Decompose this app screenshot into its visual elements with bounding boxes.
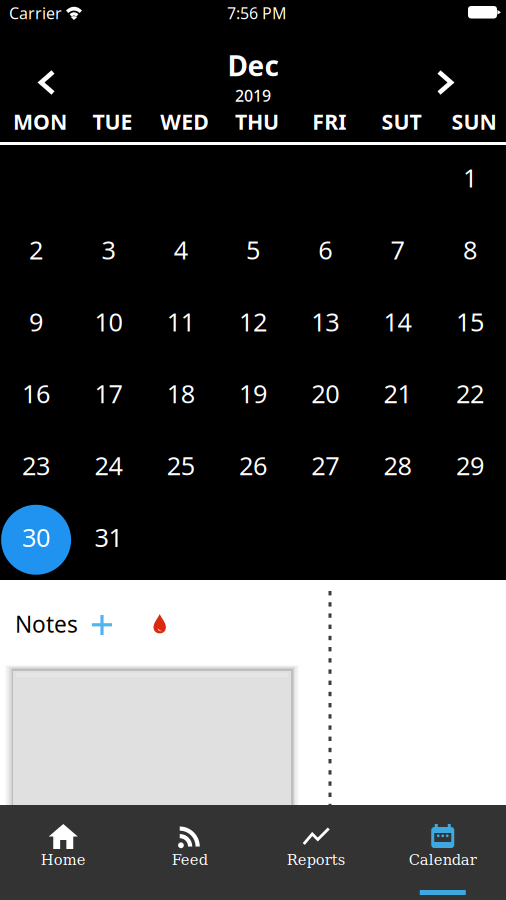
button[interactable]: Home: [0, 805, 126, 900]
staticText: Home: [41, 851, 86, 869]
button[interactable]: 25: [144, 435, 217, 507]
button[interactable]: 2: [0, 220, 72, 292]
button[interactable]: 18: [144, 363, 217, 435]
staticText: Calendar: [409, 851, 477, 869]
button[interactable]: 5: [217, 220, 289, 292]
staticText: 17: [94, 377, 122, 410]
staticText: 27: [311, 448, 339, 482]
button[interactable]: 24: [72, 435, 144, 507]
button[interactable]: Next month: [415, 49, 475, 115]
staticText: 24: [94, 448, 122, 482]
staticText: Notes: [15, 609, 78, 639]
button[interactable]: Log blood glucose: [145, 609, 175, 639]
staticText: 6: [318, 233, 332, 266]
staticText: 15: [456, 305, 484, 338]
staticText: 5: [246, 233, 260, 266]
button[interactable]: 27: [289, 435, 361, 507]
staticText: 28: [384, 448, 412, 482]
staticText: FRI: [312, 107, 346, 136]
staticText: 2019: [235, 85, 271, 106]
button[interactable]: Feed: [126, 805, 253, 900]
button[interactable]: 23: [0, 435, 72, 507]
button[interactable]: 15: [434, 292, 506, 363]
button[interactable]: 21: [361, 363, 434, 435]
button[interactable]: Reports: [253, 805, 379, 900]
staticText: 14: [384, 305, 412, 338]
staticText: 3: [101, 233, 115, 266]
staticText: MON: [13, 107, 67, 136]
button[interactable]: 13: [289, 292, 361, 363]
button[interactable]: 8: [434, 220, 506, 292]
button[interactable]: 22: [434, 363, 506, 435]
staticText: TUE: [92, 107, 132, 136]
staticText: Feed: [172, 851, 208, 869]
staticText: THU: [235, 107, 279, 136]
staticText: 10: [94, 305, 122, 338]
staticText: Dec: [227, 47, 278, 84]
staticText: 8: [463, 233, 477, 266]
staticText: 9: [29, 305, 43, 338]
staticText: 25: [167, 448, 195, 482]
button[interactable]: 7: [361, 220, 434, 292]
button[interactable]: 12: [217, 292, 289, 363]
staticText: 23: [22, 448, 50, 482]
button[interactable]: 11: [144, 292, 217, 363]
button[interactable]: 30: [0, 507, 72, 579]
button[interactable]: 26: [217, 435, 289, 507]
button[interactable]: Calendar: [379, 805, 506, 900]
button[interactable]: 3: [72, 220, 144, 292]
button[interactable]: 19: [217, 363, 289, 435]
staticText: 18: [167, 377, 195, 410]
staticText: 16: [22, 377, 50, 410]
button[interactable]: 14: [361, 292, 434, 363]
button[interactable]: 1: [434, 148, 506, 220]
button[interactable]: 17: [72, 363, 144, 435]
staticText: Reports: [287, 851, 346, 869]
button[interactable]: Previous month: [17, 49, 77, 115]
button[interactable]: 4: [144, 220, 217, 292]
staticText: 1: [463, 161, 477, 194]
staticText: 4: [174, 233, 188, 266]
staticText: 22: [456, 377, 484, 410]
button[interactable]: 31: [72, 507, 144, 579]
staticText: 12: [239, 305, 267, 338]
staticText: SUT: [382, 107, 422, 136]
staticText: 30: [22, 520, 50, 554]
staticText: 13: [311, 305, 339, 338]
staticText: 7:56 PM: [227, 2, 287, 24]
button[interactable]: 10: [72, 292, 144, 363]
staticText: 21: [384, 377, 412, 410]
button[interactable]: 9: [0, 292, 72, 363]
staticText: 31: [94, 520, 122, 554]
staticText: Carrier: [9, 2, 62, 24]
staticText: WED: [160, 107, 209, 136]
staticText: 19: [239, 377, 267, 410]
staticText: 7: [391, 233, 405, 266]
staticText: 20: [311, 377, 339, 410]
staticText: 11: [167, 305, 195, 338]
button[interactable]: 16: [0, 363, 72, 435]
staticText: 2: [29, 233, 43, 266]
staticText: SUN: [451, 107, 496, 136]
button[interactable]: 28: [361, 435, 434, 507]
staticText: 26: [239, 448, 267, 482]
staticText: 29: [456, 448, 484, 482]
button[interactable]: 20: [289, 363, 361, 435]
button[interactable]: 29: [434, 435, 506, 507]
button[interactable]: Add note: [85, 608, 119, 642]
button[interactable]: 6: [289, 220, 361, 292]
